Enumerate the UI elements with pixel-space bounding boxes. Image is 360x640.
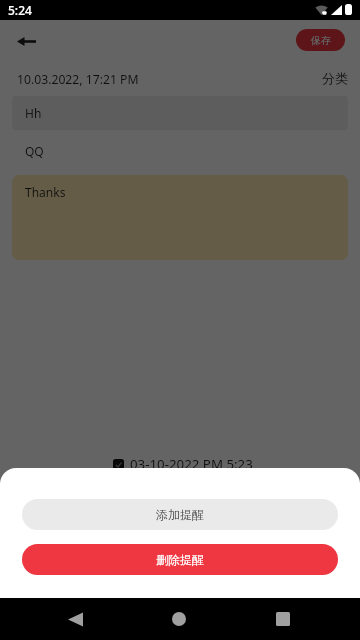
staticText: Thanks [25, 184, 66, 200]
button[interactable]: 添加提醒 [22, 499, 338, 530]
staticText: 分类 [322, 70, 348, 86]
button[interactable]: Back [53, 598, 97, 640]
staticText: 10.03.2022, 17:21 PM [17, 71, 139, 88]
button[interactable]: 保存 [296, 29, 345, 51]
button[interactable]: 分类 [322, 70, 348, 86]
staticText: 保存 [311, 34, 331, 47]
button[interactable]: 删除提醒 [22, 544, 338, 575]
staticText: Hh [25, 105, 42, 121]
button[interactable]: Hh [12, 96, 348, 130]
button[interactable]: Home [157, 598, 201, 640]
staticText: 添加提醒 [156, 507, 204, 522]
button[interactable]: Recent apps [261, 598, 305, 640]
staticText: 03-10-2022 PM 5:23 [130, 455, 253, 473]
staticText: 删除提醒 [156, 552, 204, 567]
button[interactable]: Back [7, 22, 45, 60]
staticText: 5:24 [8, 2, 32, 18]
button[interactable]: Thanks [12, 175, 348, 260]
staticText: QQ [25, 143, 44, 159]
